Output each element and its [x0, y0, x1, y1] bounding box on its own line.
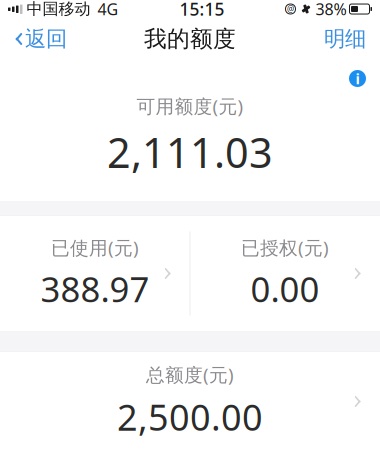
staticText: 2,500.00	[117, 393, 263, 441]
staticText: 4G	[97, 0, 118, 20]
staticText: 可用额度(元)	[136, 94, 243, 118]
button[interactable]: 已授权(元)	[190, 216, 380, 331]
staticText: 已使用(元)	[51, 235, 139, 260]
staticText: 明细	[324, 26, 366, 52]
staticText: @	[287, 4, 294, 14]
staticText: 0.00	[250, 266, 319, 312]
staticText: 中国移动	[26, 0, 90, 19]
staticText: 38%	[315, 0, 346, 20]
staticText: i	[355, 69, 359, 88]
staticText: 我的额度	[144, 25, 236, 53]
button[interactable]: 明细	[310, 20, 380, 58]
staticText: 2,111.03	[107, 124, 273, 179]
button[interactable]: 返回	[0, 20, 79, 58]
staticText: 返回	[25, 26, 67, 52]
staticText: 15:15	[179, 0, 224, 20]
staticText: 388.97	[40, 266, 149, 312]
staticText: 总额度(元)	[146, 362, 234, 387]
button[interactable]: 额度说明	[343, 64, 372, 93]
staticText: 已授权(元)	[241, 235, 329, 260]
button[interactable]: 总额度(元)	[0, 352, 380, 449]
button[interactable]: 已使用(元)	[0, 216, 190, 331]
